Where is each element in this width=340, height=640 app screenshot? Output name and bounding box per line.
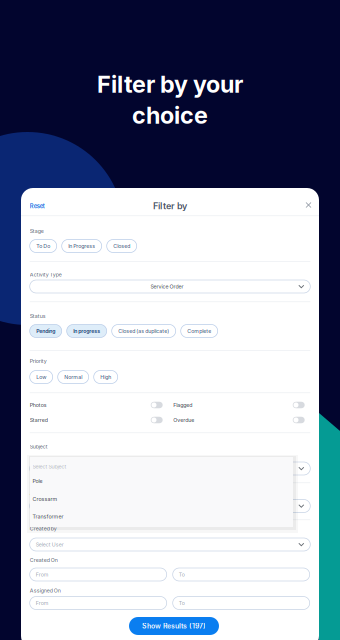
button[interactable]: In Progress [62, 239, 102, 252]
button[interactable]: Closed (as duplicate) [112, 324, 176, 337]
staticText: Created by [30, 525, 57, 532]
staticText: Overdue [173, 417, 194, 423]
button[interactable]: To [173, 568, 310, 581]
button[interactable]: To [173, 596, 310, 609]
button[interactable]: Close [306, 202, 311, 207]
button[interactable]: From [30, 568, 167, 581]
button[interactable]: Show Results (197) [129, 617, 219, 635]
staticText: Reset [30, 202, 45, 210]
staticText: In progress [73, 328, 100, 334]
button[interactable]: Reset [30, 202, 45, 210]
button[interactable]: In progress [67, 324, 107, 337]
button[interactable]: Photos [30, 400, 163, 409]
staticText: Crossarm [33, 496, 58, 502]
button[interactable]: From [30, 596, 167, 609]
staticText: Pending [36, 328, 55, 334]
button[interactable]: Starred [30, 415, 163, 424]
staticText: Select Subject [36, 465, 70, 472]
staticText: To [179, 600, 185, 606]
staticText: Low [36, 374, 46, 380]
staticText: Priority [30, 358, 47, 364]
button[interactable]: Crossarm [30, 490, 296, 507]
button[interactable]: Select Subject [30, 462, 310, 475]
staticText: To Do [36, 243, 50, 249]
staticText: From [36, 600, 49, 606]
staticText: Normal [64, 374, 82, 380]
staticText: Complete [187, 328, 211, 334]
button[interactable]: Pending [30, 324, 62, 337]
staticText: Filter by your [97, 70, 243, 98]
staticText: Subject [30, 443, 48, 450]
button[interactable]: Low [30, 370, 53, 383]
staticText: Closed (as duplicate) [118, 328, 169, 334]
staticText: Flagged [173, 402, 192, 408]
staticText: Filter by [153, 200, 187, 211]
staticText: Activity Type [30, 271, 62, 278]
button[interactable]: Select User [30, 499, 310, 512]
button[interactable]: Flagged [173, 400, 305, 409]
staticText: Select User [36, 541, 64, 548]
staticText: In Progress [68, 243, 95, 249]
staticText: To [179, 571, 185, 578]
button[interactable]: Service Order [30, 280, 310, 293]
staticText: High [100, 374, 111, 380]
button[interactable]: High [94, 370, 118, 383]
staticText: Pole [33, 478, 43, 484]
staticText: Stage [30, 228, 44, 234]
button[interactable]: Select User [30, 538, 310, 551]
button[interactable]: Pole [30, 472, 296, 489]
staticText: From [36, 571, 49, 578]
button[interactable]: Complete [181, 324, 218, 337]
staticText: Starred [30, 417, 48, 423]
staticText: Select Subject [33, 463, 67, 470]
button[interactable]: Overdue [173, 415, 305, 424]
staticText: choice [132, 101, 208, 129]
button[interactable]: Normal [58, 370, 89, 383]
staticText: Show Results (197) [142, 622, 206, 630]
staticText: Assigned On [30, 587, 61, 594]
staticText: Created On [30, 557, 58, 563]
staticText: Status [30, 313, 46, 319]
staticText: Transformer [33, 513, 64, 520]
staticText: Service Order [150, 283, 183, 290]
button[interactable]: To Do [30, 239, 57, 252]
button[interactable]: Closed [107, 239, 137, 252]
staticText: Closed [113, 243, 130, 249]
staticText: Photos [30, 402, 47, 408]
button[interactable]: Transformer [30, 508, 296, 525]
